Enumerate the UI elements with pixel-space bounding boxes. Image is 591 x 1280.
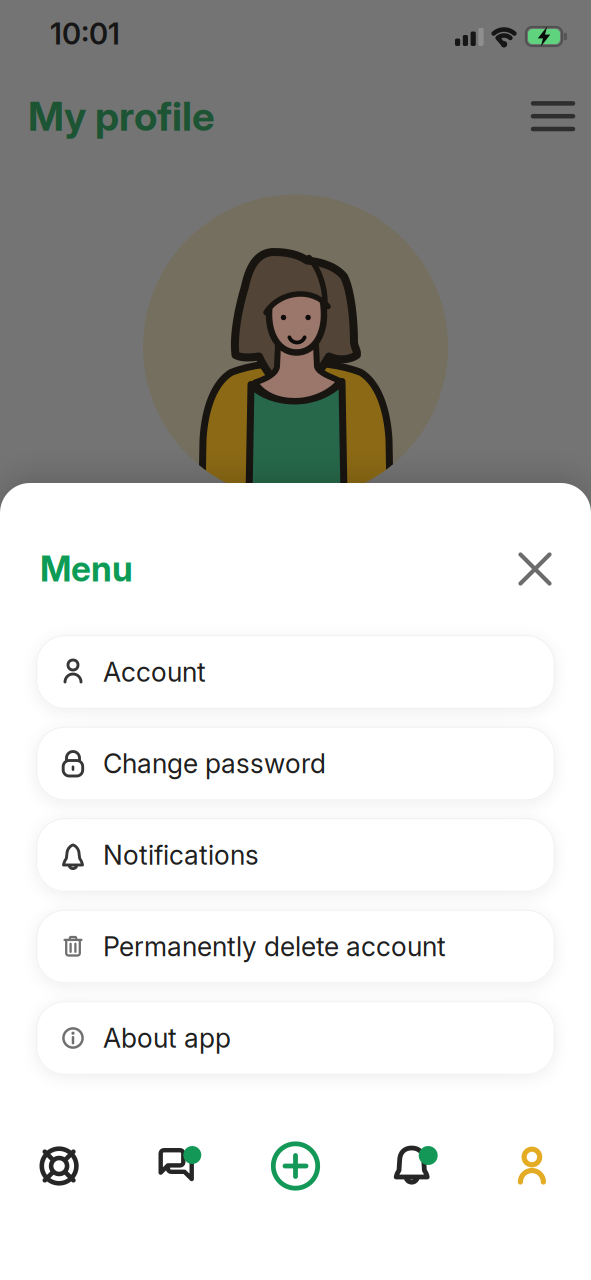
staticText: My profile [28,92,215,140]
button[interactable]: Help [0,1136,118,1196]
staticText: 10:01 [50,16,120,51]
staticText: Menu [40,548,133,590]
button[interactable]: Close [510,544,560,594]
staticText: Notifications [103,839,259,871]
button[interactable]: Chats [118,1136,236,1196]
staticText: Change password [103,747,326,780]
staticText: Account [103,656,206,688]
button[interactable]: About app [36,1001,555,1075]
button[interactable]: Alerts [355,1136,473,1196]
staticText: About app [103,1022,231,1054]
button[interactable]: Change password [36,726,555,800]
staticText: Permanently delete account [103,930,446,963]
button[interactable]: Notifications [36,818,555,892]
button[interactable]: Account [36,635,555,709]
button[interactable]: Add [236,1136,355,1196]
button[interactable]: Menu [532,93,574,139]
button[interactable]: Profile [473,1136,591,1196]
button[interactable]: Permanently delete account [36,909,555,983]
